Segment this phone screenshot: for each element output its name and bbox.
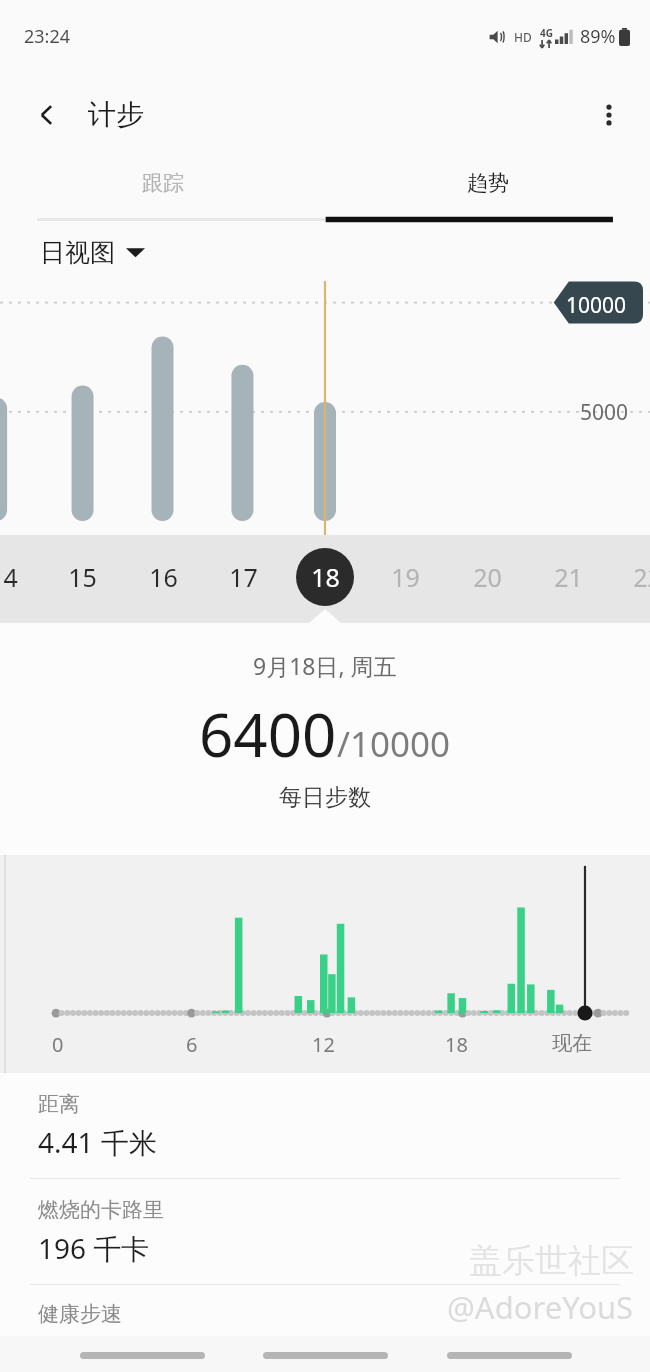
- staticText: 0: [52, 1031, 64, 1058]
- button[interactable]: 20: [458, 548, 516, 606]
- staticText: 计步: [88, 97, 144, 132]
- button[interactable]: Back: [22, 90, 72, 140]
- button[interactable]: 19: [376, 548, 434, 606]
- staticText: 跟踪: [142, 170, 184, 196]
- button[interactable]: 距离: [0, 1073, 650, 1178]
- staticText: 18: [445, 1031, 468, 1058]
- staticText: 21: [554, 560, 583, 594]
- button[interactable]: 日视图: [40, 237, 145, 268]
- button[interactable]: 燃烧的卡路里: [0, 1179, 650, 1284]
- staticText: 盖乐世社区: [469, 1240, 634, 1282]
- button[interactable]: 21: [539, 548, 597, 606]
- staticText: 20: [473, 560, 502, 594]
- button[interactable]: 16: [134, 548, 192, 606]
- staticText: 健康步速: [38, 1301, 122, 1327]
- staticText: 196 千卡: [38, 1229, 150, 1267]
- staticText: 19: [391, 560, 420, 594]
- staticText: 12: [312, 1031, 335, 1058]
- staticText: 距离: [38, 1091, 80, 1117]
- button[interactable]: More options: [584, 90, 634, 140]
- button[interactable]: 17: [214, 548, 272, 606]
- staticText: 5000: [580, 398, 629, 427]
- button[interactable]: 18: [296, 548, 354, 606]
- staticText: 4G: [540, 26, 553, 40]
- staticText: 趋势: [467, 170, 509, 196]
- button[interactable]: Navigation: [447, 1352, 572, 1359]
- staticText: 16: [149, 560, 178, 594]
- staticText: HD: [514, 29, 532, 45]
- staticText: 现在: [552, 1031, 592, 1056]
- staticText: 每日步数: [279, 783, 371, 812]
- staticText: @AdoreYouS: [447, 1286, 634, 1328]
- staticText: 23:24: [24, 24, 71, 49]
- button[interactable]: Navigation: [263, 1352, 388, 1359]
- staticText: 17: [229, 560, 258, 594]
- staticText: 14: [0, 560, 18, 594]
- button[interactable]: 22: [618, 548, 650, 606]
- staticText: 6: [186, 1031, 198, 1058]
- staticText: 6400: [199, 693, 337, 775]
- staticText: 22: [633, 560, 650, 594]
- staticText: 燃烧的卡路里: [38, 1197, 164, 1223]
- button[interactable]: 14: [0, 548, 32, 606]
- button[interactable]: Navigation: [80, 1352, 205, 1359]
- staticText: 9月18日, 周五: [253, 650, 397, 681]
- staticText: 4.41 千米: [38, 1123, 157, 1161]
- staticText: /10000: [337, 720, 451, 768]
- staticText: 10000: [566, 291, 627, 320]
- button[interactable]: 15: [53, 548, 111, 606]
- staticText: 15: [68, 560, 97, 594]
- staticText: 日视图: [40, 237, 115, 268]
- button[interactable]: 健康步速: [0, 1285, 650, 1345]
- staticText: 18: [311, 560, 340, 594]
- button[interactable]: 趋势: [325, 157, 650, 223]
- staticText: 89%: [580, 24, 616, 49]
- button[interactable]: 跟踪: [0, 157, 325, 223]
